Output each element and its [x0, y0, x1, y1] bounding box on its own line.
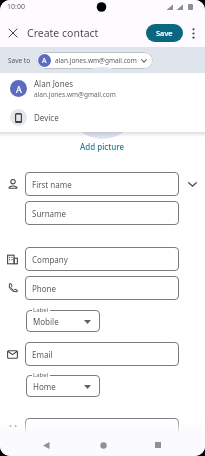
button[interactable]: First name	[25, 172, 179, 196]
button[interactable]: Device	[0, 103, 205, 132]
button[interactable]	[25, 418, 179, 442]
staticText: 10:00	[7, 2, 25, 12]
button[interactable]: Save	[146, 24, 183, 42]
button[interactable]	[97, 439, 109, 451]
button[interactable]: Phone	[25, 276, 179, 300]
staticText: Label	[33, 306, 49, 314]
staticText: A	[16, 83, 22, 95]
button[interactable]	[40, 439, 52, 451]
button[interactable]: Company	[25, 247, 179, 271]
staticText: Add picture	[80, 141, 125, 152]
staticText: Home	[33, 381, 56, 392]
button[interactable]: Mobile	[26, 310, 100, 332]
button[interactable]: Home	[26, 375, 100, 397]
staticText: Save to	[8, 56, 31, 65]
staticText: Save	[156, 28, 173, 38]
button[interactable]: A	[36, 52, 153, 69]
staticText: Create contact	[27, 26, 99, 40]
button[interactable]	[152, 439, 164, 451]
button[interactable]: A	[0, 73, 205, 103]
button[interactable]	[7, 27, 18, 38]
staticText: Label	[33, 371, 49, 379]
button[interactable]: Surname	[25, 201, 179, 225]
staticText: Mobile	[33, 316, 59, 327]
staticText: A	[42, 56, 47, 66]
staticText: Phone	[32, 283, 57, 294]
staticText: Surname	[32, 208, 67, 219]
staticText: Device	[34, 112, 59, 123]
staticText: alan.jones.wm@gmail.com	[34, 90, 116, 99]
button[interactable]: Email	[25, 342, 179, 366]
staticText: Email	[32, 349, 53, 360]
staticText: Alan Jones	[34, 78, 73, 89]
staticText: alan.jones.wm@gmail.com	[55, 56, 137, 65]
button[interactable]	[185, 25, 201, 41]
staticText: First name	[32, 179, 72, 190]
staticText: Company	[32, 254, 68, 265]
button[interactable]: Add picture	[0, 139, 205, 153]
